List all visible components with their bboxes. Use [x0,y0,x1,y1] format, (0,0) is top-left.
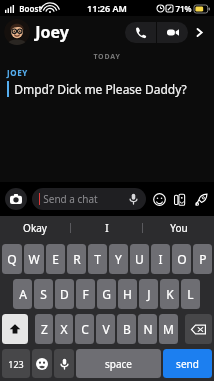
button[interactable]: Okay [0,216,70,240]
staticText: Send a chat [43,192,98,206]
button[interactable]: Z [35,314,53,344]
staticText: JOEY [7,67,28,78]
staticText: F [82,286,89,302]
button[interactable]: Rocket [194,192,209,207]
staticText: I [105,221,109,235]
button[interactable]: C [75,314,94,344]
button[interactable]: M [159,314,178,344]
staticText: send [176,357,199,371]
button[interactable]: Video call [157,22,188,43]
staticText: Dmpd? Dick me Please Daddy? [14,81,187,97]
button[interactable]: V [96,314,115,344]
staticText: O [177,251,187,267]
staticText: G [102,286,111,302]
button[interactable]: H [118,279,137,309]
button[interactable]: N [138,314,157,344]
button[interactable]: I [151,244,170,274]
button[interactable]: space [76,349,161,378]
button[interactable]: E [46,244,65,274]
staticText: C [81,321,89,337]
staticText: P [199,251,207,267]
button[interactable]: D [55,279,74,309]
button[interactable]: X [55,314,73,344]
button[interactable]: A [13,279,32,309]
staticText: space [105,357,132,371]
button[interactable]: Q [2,244,22,274]
staticText: X [60,321,68,337]
staticText: V [102,321,110,337]
staticText: A [19,286,27,302]
staticText: Boost [19,3,42,14]
button[interactable]: O [172,244,191,274]
staticText: N [143,321,153,337]
button[interactable]: T [88,244,107,274]
staticText: D [60,286,69,302]
staticText: U [135,251,144,267]
staticText: Q [7,251,17,267]
button[interactable]: S [34,279,53,309]
button[interactable]: Emoji keyboard [32,349,52,378]
staticText: Joey [35,21,69,43]
button[interactable]: W [24,244,44,274]
staticText: L [187,286,194,302]
button[interactable]: Camera [5,188,27,210]
button[interactable]: Profile [4,19,30,45]
button[interactable]: J [139,279,158,309]
staticText: 11:26 AM [87,2,127,14]
button[interactable]: I [71,216,142,240]
staticText: B [123,321,131,337]
button[interactable]: You [143,216,214,240]
button[interactable]: Y [109,244,128,274]
button[interactable]: F [76,279,95,309]
staticText: J [147,286,151,302]
staticText: M [163,321,174,337]
staticText: Y [115,251,122,267]
button[interactable]: Emoji [152,192,167,207]
button[interactable]: Dictation [54,349,74,378]
button[interactable]: U [130,244,149,274]
button[interactable]: G [97,279,116,309]
button[interactable]: More [188,20,210,44]
button[interactable]: 123 [2,349,30,378]
button[interactable]: Call [125,22,156,43]
staticText: T [94,251,101,267]
button[interactable]: Backspace [185,314,212,344]
staticText: 71% [175,3,192,14]
staticText: I [158,251,163,267]
button[interactable]: Voice message [127,193,139,205]
button[interactable]: B [117,314,136,344]
staticText: Z [41,321,48,337]
staticText: Okay [23,221,47,235]
staticText: R [73,251,81,267]
button[interactable]: L [181,279,200,309]
button[interactable]: Send a chat [32,188,146,210]
staticText: TODAY [93,52,121,62]
button[interactable]: send [163,349,212,378]
button[interactable]: R [67,244,86,274]
staticText: W [28,251,40,267]
staticText: H [123,286,132,302]
button[interactable]: Stickers [173,192,188,207]
staticText: K [166,286,174,302]
button[interactable]: K [160,279,179,309]
staticText: E [52,251,59,267]
staticText: You [170,221,188,235]
button[interactable]: Shift [2,314,28,344]
button[interactable]: P [193,244,212,274]
staticText: S [40,286,47,302]
staticText: 123 [8,358,24,370]
